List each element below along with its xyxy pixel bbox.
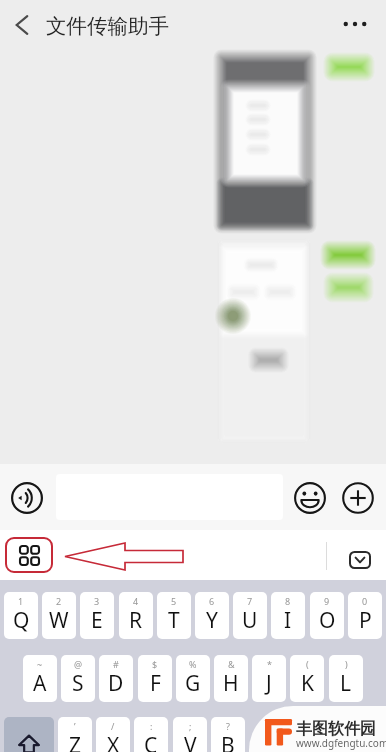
- button[interactable]: *: [252, 655, 286, 702]
- staticText: K: [301, 669, 314, 698]
- button[interactable]: 3: [80, 592, 114, 639]
- staticText: U: [242, 606, 258, 635]
- staticText: X: [107, 731, 120, 752]
- button[interactable]: 5: [157, 592, 191, 639]
- staticText: O: [319, 606, 336, 635]
- button[interactable]: ): [329, 655, 363, 702]
- staticText: ): [345, 658, 348, 670]
- staticText: 0: [362, 595, 368, 607]
- staticText: Q: [13, 606, 30, 635]
- staticText: V: [184, 731, 197, 752]
- button[interactable]: ’: [58, 717, 92, 752]
- button[interactable]: 4: [119, 592, 153, 639]
- button[interactable]: ~: [23, 655, 57, 702]
- staticText: T: [168, 606, 180, 635]
- staticText: 9: [324, 595, 330, 607]
- button[interactable]: &: [214, 655, 248, 702]
- staticText: R: [129, 606, 143, 635]
- staticText: %: [189, 658, 197, 670]
- staticText: A: [33, 669, 47, 698]
- button[interactable]: $: [138, 655, 172, 702]
- button[interactable]: Shift: [4, 717, 54, 752]
- staticText: I: [284, 606, 292, 635]
- staticText: S: [72, 669, 84, 698]
- staticText: 5: [171, 595, 177, 607]
- staticText: @: [74, 658, 83, 670]
- staticText: :: [150, 720, 153, 732]
- button[interactable]: More options: [336, 5, 374, 43]
- button[interactable]: ;: [173, 717, 207, 752]
- staticText: P: [359, 606, 372, 635]
- staticText: $: [152, 658, 158, 670]
- button[interactable]: ?: [211, 717, 245, 752]
- staticText: www.dgfengtu.com: [296, 736, 386, 750]
- button[interactable]: Voice input: [9, 480, 45, 516]
- staticText: #: [113, 658, 119, 670]
- staticText: Y: [206, 606, 218, 635]
- staticText: 8: [285, 595, 291, 607]
- staticText: ;: [189, 720, 192, 732]
- button[interactable]: #: [99, 655, 133, 702]
- staticText: &: [228, 658, 235, 670]
- staticText: ~: [37, 658, 43, 670]
- staticText: J: [266, 669, 272, 698]
- button[interactable]: 8: [271, 592, 305, 639]
- button[interactable]: /: [96, 717, 130, 752]
- staticText: 2: [56, 595, 62, 607]
- staticText: /: [111, 720, 115, 732]
- staticText: 文件传输助手: [46, 13, 169, 39]
- button[interactable]: Emoji: [292, 480, 328, 516]
- button[interactable]: 7: [233, 592, 267, 639]
- staticText: Z: [69, 731, 82, 752]
- staticText: 丰图软件园: [296, 719, 376, 739]
- staticText: 6: [209, 595, 215, 607]
- staticText: D: [108, 669, 124, 698]
- button[interactable]: %: [176, 655, 210, 702]
- button[interactable]: (: [290, 655, 324, 702]
- button[interactable]: 0: [348, 592, 382, 639]
- staticText: W: [49, 606, 69, 635]
- staticText: B: [221, 731, 235, 752]
- button[interactable]: 1: [4, 592, 38, 639]
- staticText: F: [150, 669, 161, 698]
- staticText: L: [340, 669, 352, 698]
- staticText: 3: [94, 595, 100, 607]
- button[interactable]: 9: [310, 592, 344, 639]
- staticText: ’: [74, 720, 76, 732]
- staticText: H: [223, 669, 239, 698]
- staticText: E: [91, 606, 103, 635]
- button[interactable]: More: [340, 480, 376, 516]
- button[interactable]: 6: [195, 592, 229, 639]
- button[interactable]: Back: [4, 7, 39, 42]
- button[interactable]: :: [134, 717, 168, 752]
- button[interactable]: @: [61, 655, 95, 702]
- button[interactable]: 2: [42, 592, 76, 639]
- staticText: (: [306, 658, 309, 670]
- staticText: *: [267, 658, 272, 670]
- staticText: 7: [247, 595, 253, 607]
- button[interactable]: Hide keyboard: [342, 542, 378, 578]
- staticText: C: [144, 731, 158, 752]
- staticText: ?: [226, 720, 230, 732]
- staticText: G: [185, 669, 201, 698]
- staticText: 1: [18, 595, 24, 607]
- button[interactable]: Keyboard layouts: [5, 537, 53, 573]
- staticText: 4: [133, 595, 139, 607]
